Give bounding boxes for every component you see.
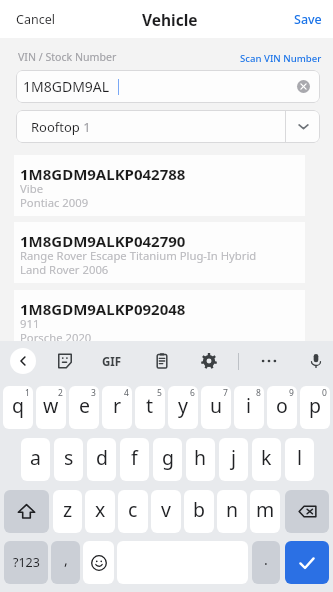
- button[interactable]: Backspace: [285, 490, 329, 533]
- staticText: 7: [223, 387, 228, 399]
- staticText: x: [95, 496, 106, 523]
- staticText: ?123: [13, 554, 40, 571]
- button[interactable]: n: [217, 490, 247, 533]
- button[interactable]: m: [250, 490, 280, 533]
- button[interactable]: v: [151, 490, 181, 533]
- staticText: 8: [256, 387, 261, 399]
- button[interactable]: 1M8GDM9ALKP042788: [14, 155, 305, 216]
- button[interactable]: j: [219, 438, 248, 481]
- button[interactable]: p: [300, 386, 330, 429]
- staticText: o: [276, 392, 288, 419]
- button[interactable]: Settings: [196, 348, 222, 374]
- staticText: 1M8GDM9ALKP042790: [20, 231, 186, 251]
- staticText: 911: [20, 316, 40, 331]
- staticText: 1M8GDM9ALKP092048: [20, 299, 186, 319]
- button[interactable]: x: [85, 490, 115, 533]
- staticText: k: [261, 444, 272, 471]
- staticText: Rooftop 1: [31, 118, 91, 136]
- staticText: Vehicle: [142, 9, 198, 30]
- button[interactable]: Shift: [4, 490, 49, 533]
- button[interactable]: Back: [10, 348, 36, 374]
- staticText: w: [43, 392, 59, 419]
- staticText: Vibe: [20, 181, 44, 196]
- button[interactable]: 1M8GDM9ALKP092048: [14, 290, 305, 351]
- button[interactable]: l: [285, 438, 314, 481]
- staticText: s: [64, 444, 74, 471]
- button[interactable]: Clear text: [297, 80, 310, 93]
- button[interactable]: s: [54, 438, 83, 481]
- button[interactable]: Rooftop 1: [16, 110, 320, 143]
- staticText: 5: [157, 387, 162, 399]
- staticText: Camry: [20, 384, 55, 399]
- staticText: Pontiac 2009: [20, 195, 89, 210]
- staticText: p: [309, 392, 321, 419]
- button[interactable]: Cancel: [8, 7, 63, 32]
- button[interactable]: Stickers: [52, 348, 78, 374]
- button[interactable]: 1M8GDM9ALKP092049: [14, 358, 305, 419]
- button[interactable]: z: [53, 490, 82, 533]
- button[interactable]: i: [234, 386, 264, 429]
- staticText: Save: [294, 11, 322, 28]
- staticText: c: [128, 496, 138, 523]
- button[interactable]: Scan VIN Number: [233, 49, 329, 68]
- staticText: 9: [289, 387, 294, 399]
- button[interactable]: o: [267, 386, 297, 429]
- button[interactable]: t: [135, 386, 165, 429]
- staticText: v: [161, 496, 171, 523]
- staticText: ,: [64, 550, 68, 569]
- staticText: b: [193, 496, 205, 523]
- button[interactable]: e: [69, 386, 99, 429]
- button[interactable]: h: [186, 438, 215, 481]
- staticText: q: [12, 392, 24, 419]
- staticText: j: [231, 444, 237, 471]
- button[interactable]: q: [3, 386, 33, 429]
- button[interactable]: b: [184, 490, 214, 533]
- button[interactable]: Clipboard: [149, 348, 175, 374]
- staticText: r: [113, 392, 122, 419]
- button[interactable]: ?123: [4, 541, 48, 584]
- staticText: 1M8GDM9ALKP042788: [20, 164, 186, 184]
- button[interactable]: a: [21, 438, 50, 481]
- staticText: Cancel: [16, 11, 55, 28]
- button[interactable]: .: [252, 541, 280, 584]
- staticText: h: [194, 444, 207, 471]
- staticText: a: [30, 444, 41, 471]
- button[interactable]: r: [102, 386, 132, 429]
- staticText: y: [178, 392, 188, 419]
- button[interactable]: 1M8GDM9ALKP042790: [14, 222, 305, 283]
- staticText: i: [246, 392, 252, 419]
- staticText: 3: [91, 387, 96, 399]
- button[interactable]: Enter: [285, 541, 329, 584]
- staticText: Toyota 2018: [20, 398, 84, 413]
- staticText: 1M8GDM9AL: [23, 77, 110, 96]
- staticText: e: [79, 392, 90, 419]
- button[interactable]: y: [168, 386, 198, 429]
- button[interactable]: u: [201, 386, 231, 429]
- button[interactable]: Emoji: [83, 541, 114, 584]
- button[interactable]: c: [118, 490, 148, 533]
- staticText: n: [226, 496, 239, 523]
- staticText: l: [297, 444, 303, 471]
- button[interactable]: d: [87, 438, 116, 481]
- staticText: GIF: [102, 354, 122, 370]
- staticText: 1: [25, 387, 30, 399]
- button[interactable]: ,: [51, 541, 80, 584]
- button[interactable]: Voice input: [303, 348, 329, 374]
- staticText: f: [131, 444, 138, 471]
- staticText: m: [256, 496, 275, 523]
- staticText: VIN / Stock Number: [18, 50, 117, 64]
- staticText: 6: [190, 387, 195, 399]
- staticText: d: [96, 444, 108, 471]
- button[interactable]: Save: [286, 7, 330, 32]
- staticText: z: [63, 496, 73, 523]
- button[interactable]: More options: [256, 348, 282, 374]
- button[interactable]: 1M8GDM9AL: [16, 70, 320, 103]
- button[interactable]: g: [153, 438, 182, 481]
- button[interactable]: f: [120, 438, 149, 481]
- staticText: g: [162, 444, 174, 471]
- button[interactable]: w: [36, 386, 66, 429]
- staticText: Range Rover Escape Titanium Plug-In Hybr…: [20, 248, 257, 263]
- button[interactable]: GIF: [98, 348, 126, 375]
- button[interactable]: k: [252, 438, 281, 481]
